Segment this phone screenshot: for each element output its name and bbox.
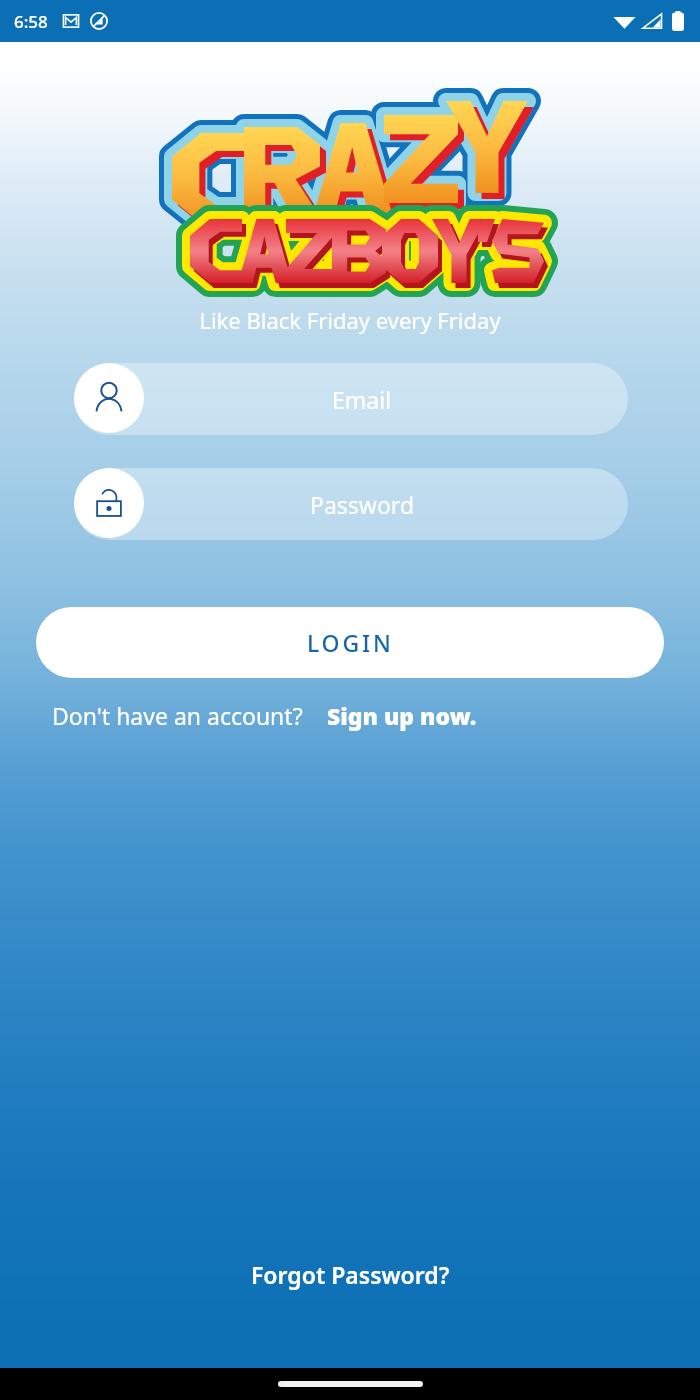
button[interactable]: Sign up now. (327, 700, 477, 731)
button[interactable]: Password (0, 468, 700, 540)
button[interactable]: Don't have an account? (52, 700, 303, 731)
staticText: Like Black Friday every Friday (199, 305, 501, 335)
other: Email (74, 363, 144, 433)
staticText: Password (310, 489, 415, 520)
staticText: LOGIN (307, 627, 394, 658)
other: Password (74, 468, 144, 538)
staticText: Email (332, 384, 392, 415)
staticText: Forgot Password? (251, 1259, 450, 1290)
button[interactable]: Forgot Password? (237, 1251, 464, 1298)
button[interactable]: LOGIN (36, 607, 664, 678)
button[interactable]: Email (0, 363, 700, 435)
staticText: 6:58 (14, 10, 48, 33)
